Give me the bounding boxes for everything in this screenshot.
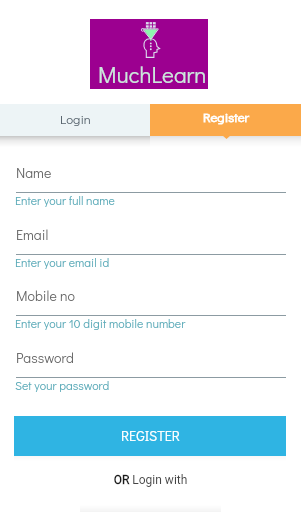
staticText: Name: [16, 163, 52, 181]
staticText: Enter your 10 digit mobile number: [15, 315, 186, 331]
staticText: Mobile no: [16, 286, 75, 304]
staticText: Enter your full name: [15, 192, 115, 208]
staticText: Password: [16, 348, 74, 366]
button[interactable]: Register: [150, 104, 301, 136]
staticText: Register: [203, 108, 249, 125]
button[interactable]: Name: [16, 163, 286, 206]
button[interactable]: Social login: [80, 505, 221, 512]
staticText: Email: [16, 225, 49, 243]
button[interactable]: Email: [16, 225, 286, 268]
staticText: MuchLearn: [98, 59, 207, 88]
button[interactable]: Login: [0, 104, 150, 136]
button[interactable]: Mobile no: [16, 286, 286, 329]
staticText: Enter your email id: [15, 254, 110, 270]
staticText: Set your password: [15, 377, 110, 393]
button[interactable]: REGISTER: [14, 416, 286, 456]
staticText: Login: [60, 110, 91, 127]
staticText: REGISTER: [121, 426, 180, 444]
staticText: OR Login with: [0, 473, 301, 487]
button[interactable]: Password: [16, 348, 286, 391]
